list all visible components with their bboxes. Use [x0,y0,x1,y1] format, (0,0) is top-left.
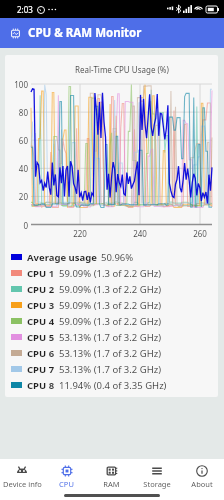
staticText: CPU 1 [27,267,55,280]
staticText: About [191,479,213,489]
staticText: CPU 5 [27,331,55,344]
staticText: 53.13% (1.7 of 3.2 GHz) [59,331,162,344]
staticText: CPU 6 [27,347,55,360]
other: App icon [10,28,21,39]
button[interactable]: Average usage [5,249,218,265]
staticText: Device info [3,479,42,489]
staticText: 240 [133,228,147,239]
staticText: Real-Time CPU Usage (%) [75,64,169,75]
button[interactable]: CPU 5 [5,329,218,345]
staticText: CPU 7 [27,363,55,376]
button[interactable]: CPU 7 [5,361,218,377]
staticText: 11.94% (0.4 of 3.35 GHz) [59,379,167,392]
staticText: Storage [143,479,171,489]
staticText: CPU [59,479,74,489]
staticText: 100 [14,79,28,89]
staticText: 80 [18,107,28,117]
staticText: 20 [18,191,28,201]
staticText: 0 [23,220,28,230]
staticText: 220 [73,228,87,239]
button[interactable]: RAM [89,462,134,489]
button[interactable]: CPU 3 [5,297,218,313]
button[interactable]: CPU 6 [5,345,218,361]
staticText: 2:03 [17,4,33,15]
staticText: 53.13% (1.7 of 3.2 GHz) [59,347,162,360]
staticText: CPU 8 [27,379,55,392]
button[interactable]: Storage [134,462,179,489]
staticText: 59.09% (1.3 of 2.2 GHz) [59,315,162,328]
staticText: 59.09% (1.3 of 2.2 GHz) [59,299,162,312]
staticText: 53.13% (1.7 of 3.2 GHz) [59,363,162,376]
button[interactable]: CPU 4 [5,313,218,329]
staticText: 260 [193,228,207,239]
staticText: 50.96% [101,251,134,264]
button[interactable]: CPU 2 [5,281,218,297]
staticText: CPU 4 [27,315,55,328]
staticText: 40 [18,163,28,173]
staticText: 60 [18,135,28,145]
staticText: RAM [103,479,120,489]
button[interactable]: CPU 8 [5,377,218,393]
staticText: 59.09% (1.3 of 2.2 GHz) [59,283,162,296]
button[interactable]: About [179,462,224,489]
button[interactable]: CPU [44,462,89,489]
staticText: CPU 3 [27,299,55,312]
staticText: Average usage [27,251,97,264]
button[interactable]: CPU 1 [5,265,218,281]
staticText: CPU & RAM Monitor [28,25,142,41]
staticText: CPU 2 [27,283,55,296]
staticText: 59.09% (1.3 of 2.2 GHz) [59,267,162,280]
button[interactable]: Device info [0,462,44,489]
